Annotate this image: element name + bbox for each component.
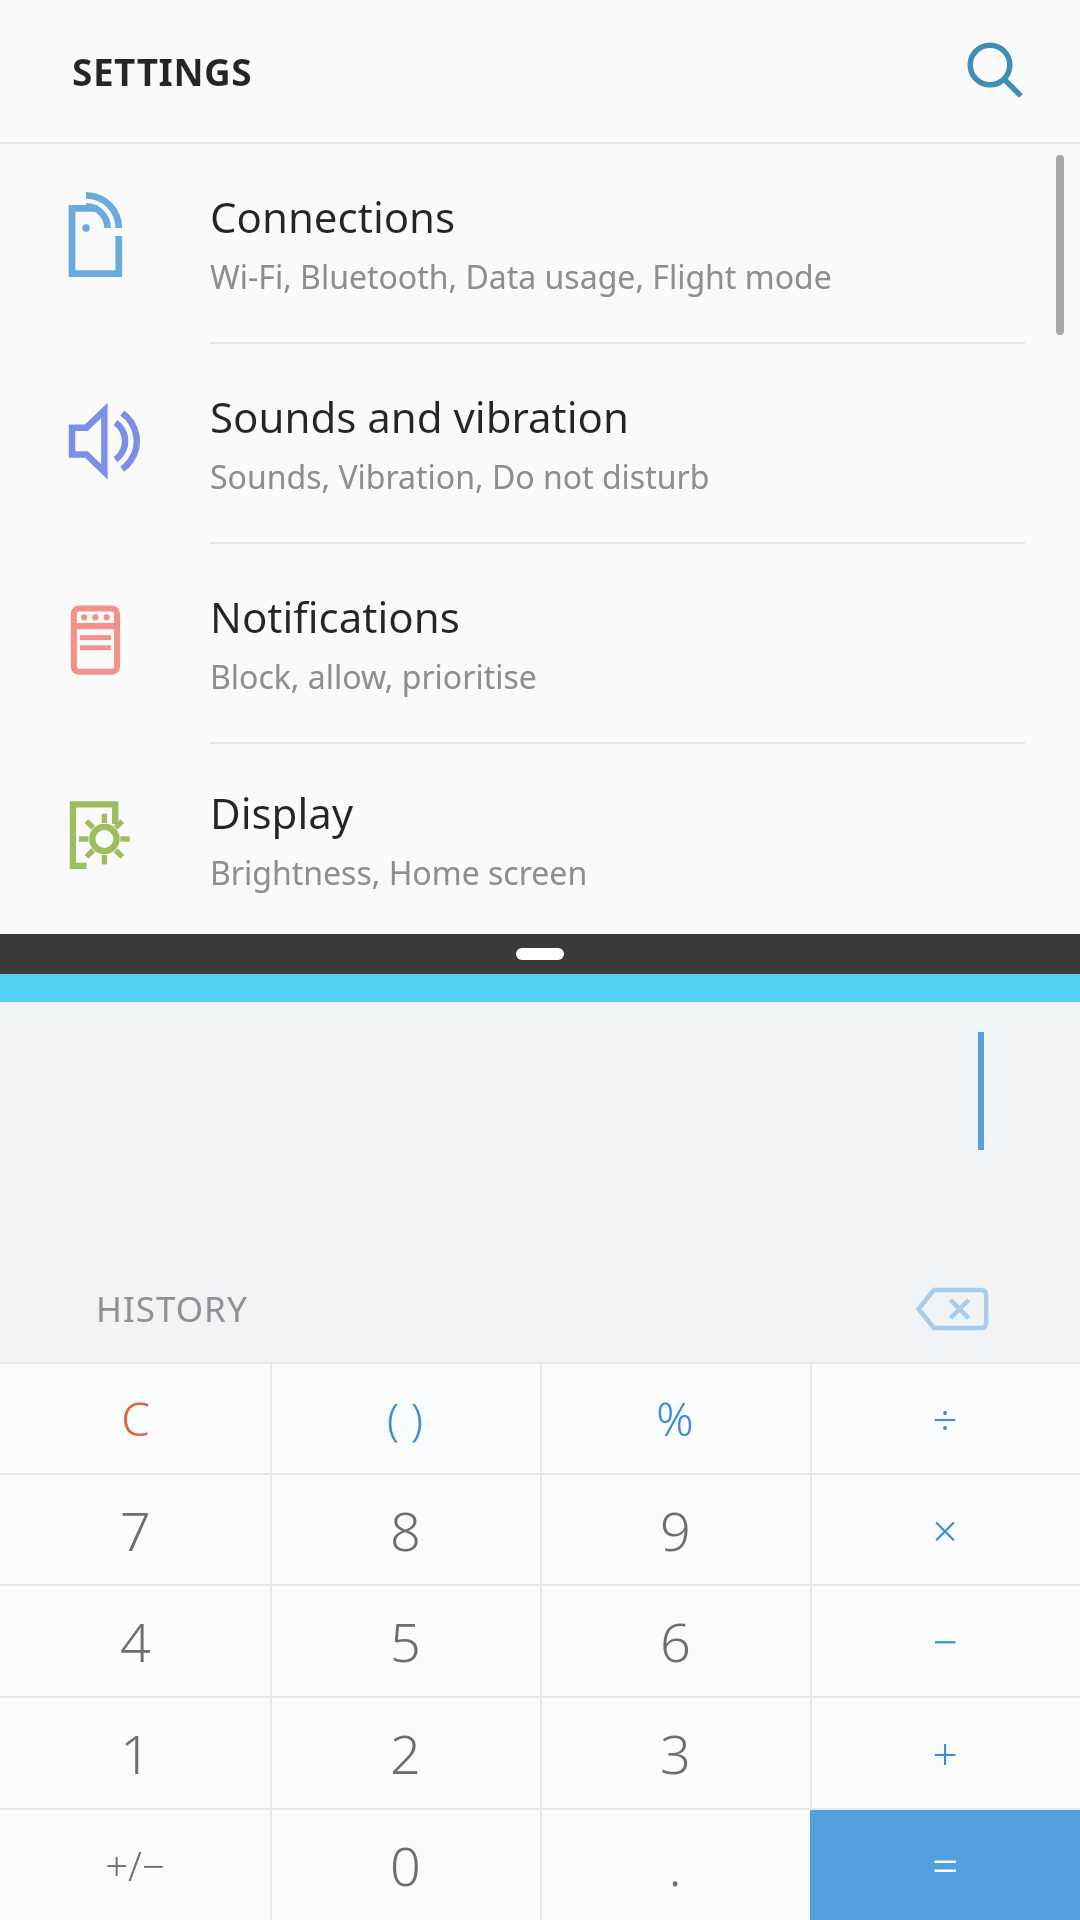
button[interactable]: 4 bbox=[0, 1586, 270, 1696]
button[interactable]: 6 bbox=[540, 1586, 810, 1696]
staticText: ( ) bbox=[387, 1389, 423, 1449]
button[interactable]: Backspace bbox=[904, 1261, 1000, 1357]
staticText: Notifications bbox=[210, 588, 460, 645]
staticText: Wi-Fi, Bluetooth, Data usage, Flight mod… bbox=[210, 255, 832, 299]
staticText: Brightness, Home screen bbox=[210, 851, 588, 895]
staticText: +/− bbox=[105, 1838, 165, 1892]
button[interactable]: Sounds and vibration bbox=[0, 344, 1080, 542]
staticText: Block, allow, prioritise bbox=[210, 655, 537, 699]
button[interactable]: 1 bbox=[0, 1698, 270, 1808]
staticText: 2 bbox=[390, 1716, 421, 1790]
button[interactable]: 2 bbox=[270, 1698, 540, 1808]
button[interactable]: 0 bbox=[270, 1810, 540, 1920]
button[interactable]: C bbox=[0, 1364, 270, 1473]
staticText: × bbox=[932, 1500, 958, 1560]
staticText: SETTINGS bbox=[72, 46, 253, 96]
button[interactable]: = bbox=[810, 1810, 1080, 1920]
button[interactable]: +/− bbox=[0, 1810, 270, 1920]
staticText: + bbox=[932, 1723, 958, 1783]
staticText: Connections bbox=[210, 188, 456, 245]
button[interactable]: ( ) bbox=[270, 1364, 540, 1473]
staticText: 6 bbox=[660, 1604, 691, 1678]
button[interactable]: Resize split screen bbox=[516, 948, 564, 960]
staticText: 3 bbox=[660, 1716, 691, 1790]
button[interactable]: . bbox=[540, 1810, 810, 1920]
staticText: . bbox=[668, 1828, 682, 1902]
button[interactable]: + bbox=[810, 1698, 1080, 1808]
staticText: Sounds, Vibration, Do not disturb bbox=[210, 455, 710, 499]
button[interactable]: ÷ bbox=[810, 1364, 1080, 1473]
staticText: % bbox=[656, 1387, 694, 1450]
staticText: 0 bbox=[390, 1828, 421, 1902]
staticText: Sounds and vibration bbox=[210, 388, 629, 445]
button[interactable]: 8 bbox=[270, 1475, 540, 1584]
button[interactable]: 3 bbox=[540, 1698, 810, 1808]
button[interactable]: HISTORY bbox=[96, 1285, 248, 1333]
staticText: Display bbox=[210, 784, 354, 841]
staticText: 7 bbox=[120, 1493, 151, 1567]
staticText: 4 bbox=[120, 1604, 151, 1678]
staticText: ÷ bbox=[932, 1389, 958, 1449]
staticText: 5 bbox=[390, 1604, 421, 1678]
button[interactable]: Search bbox=[948, 23, 1044, 119]
button[interactable]: Notifications bbox=[0, 544, 1080, 742]
button[interactable]: 5 bbox=[270, 1586, 540, 1696]
staticText: 9 bbox=[660, 1493, 691, 1567]
staticText: 1 bbox=[120, 1716, 151, 1790]
button[interactable]: Connections bbox=[0, 144, 1080, 342]
staticText: C bbox=[121, 1387, 150, 1450]
staticText: 8 bbox=[390, 1493, 421, 1567]
staticText: = bbox=[932, 1834, 959, 1897]
button[interactable]: 7 bbox=[0, 1475, 270, 1584]
button[interactable]: × bbox=[810, 1475, 1080, 1584]
button[interactable]: Display bbox=[0, 744, 1080, 934]
button[interactable]: − bbox=[810, 1586, 1080, 1696]
button[interactable]: % bbox=[540, 1364, 810, 1473]
staticText: − bbox=[932, 1611, 958, 1671]
button[interactable]: 9 bbox=[540, 1475, 810, 1584]
